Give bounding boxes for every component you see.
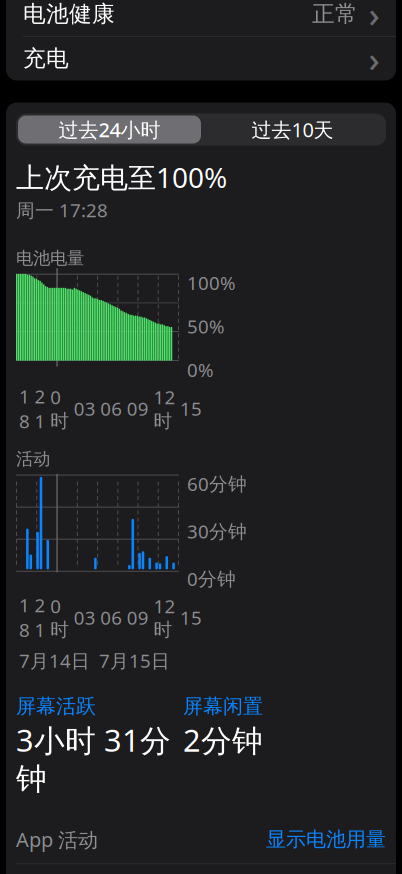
- staticText: ›: [368, 35, 379, 81]
- staticText: 0分钟: [187, 566, 236, 591]
- staticText: 过去24小时: [58, 116, 160, 143]
- staticText: 充电: [23, 45, 69, 72]
- staticText: 3小时 31分钟: [16, 720, 171, 798]
- staticText: App 活动: [16, 826, 98, 853]
- staticText: 06: [100, 605, 122, 630]
- staticText: 过去10天: [251, 116, 333, 143]
- button[interactable]: 显示电池用量: [266, 822, 386, 857]
- staticText: 100%: [187, 270, 236, 295]
- staticText: 03: [74, 605, 96, 630]
- staticText: 30分钟: [187, 519, 247, 543]
- staticText: 09: [127, 396, 149, 421]
- staticText: 06: [100, 396, 122, 421]
- staticText: 上次充电至100%: [16, 158, 227, 196]
- staticText: 0时: [50, 385, 69, 432]
- button[interactable]: 过去10天: [201, 115, 384, 143]
- staticText: 18: [19, 384, 30, 433]
- staticText: ›: [368, 0, 379, 37]
- staticText: 屏幕活跃: [16, 694, 96, 719]
- staticText: 21: [35, 384, 46, 433]
- staticText: 09: [127, 605, 149, 630]
- staticText: 21: [35, 593, 46, 642]
- staticText: 50%: [187, 314, 225, 339]
- staticText: 18: [19, 593, 30, 642]
- button[interactable]: 电池健康: [6, 0, 396, 36]
- staticText: 03: [74, 396, 96, 421]
- staticText: 显示电池用量: [266, 827, 386, 852]
- staticText: 正常: [312, 0, 358, 28]
- staticText: 15: [180, 396, 202, 421]
- button[interactable]: 过去24小时: [18, 115, 201, 143]
- staticText: 周一 17:28: [16, 198, 108, 222]
- staticText: 0时: [50, 594, 69, 641]
- staticText: 屏幕闲置: [183, 694, 263, 719]
- staticText: 电池健康: [23, 0, 115, 28]
- staticText: 2分钟: [183, 720, 263, 760]
- staticText: 0%: [187, 357, 214, 382]
- staticText: 电池电量: [16, 247, 84, 269]
- staticText: 7月15日: [99, 648, 170, 673]
- staticText: 60分钟: [187, 471, 247, 496]
- staticText: 12时: [153, 385, 175, 432]
- button[interactable]: 充电: [6, 36, 396, 80]
- staticText: 活动: [16, 448, 50, 470]
- staticText: 15: [180, 605, 202, 630]
- staticText: 7月14日: [19, 648, 90, 673]
- staticText: 12时: [153, 594, 175, 641]
